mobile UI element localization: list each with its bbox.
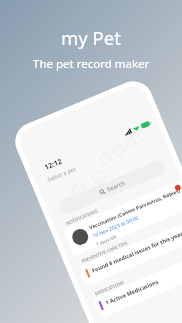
button[interactable]: 1 Active Medications (92, 250, 182, 319)
staticText: 12:12 (43, 157, 64, 173)
staticText: 1 Active Medications (104, 278, 159, 306)
staticText: The pet record maker (33, 56, 150, 72)
button[interactable]: Vaccination (Canine Parvovirus, Rabies) (63, 179, 182, 257)
button[interactable]: Search (57, 159, 167, 216)
staticText: Found 8 medical issues for this year (91, 230, 182, 274)
staticText: Vaccination (Canine Parvovirus, Rabies) (88, 187, 181, 231)
staticText: PREVENTIVE CARE TIPS (80, 239, 129, 264)
staticText: my Pet (61, 25, 121, 50)
staticText: NOTIFICATIONS (65, 207, 99, 226)
staticText: Identification (145, 269, 182, 291)
staticText: Select a pet (46, 165, 77, 183)
staticText: Medical (136, 252, 159, 268)
staticText: 10 Nov 2023 at 00:00 (92, 214, 141, 240)
staticText: MEDICATIONS (94, 279, 125, 296)
staticText: Search (106, 179, 126, 194)
button[interactable]: Found 8 medical issues for this year (79, 217, 182, 286)
staticText: 7 days left (95, 233, 118, 247)
